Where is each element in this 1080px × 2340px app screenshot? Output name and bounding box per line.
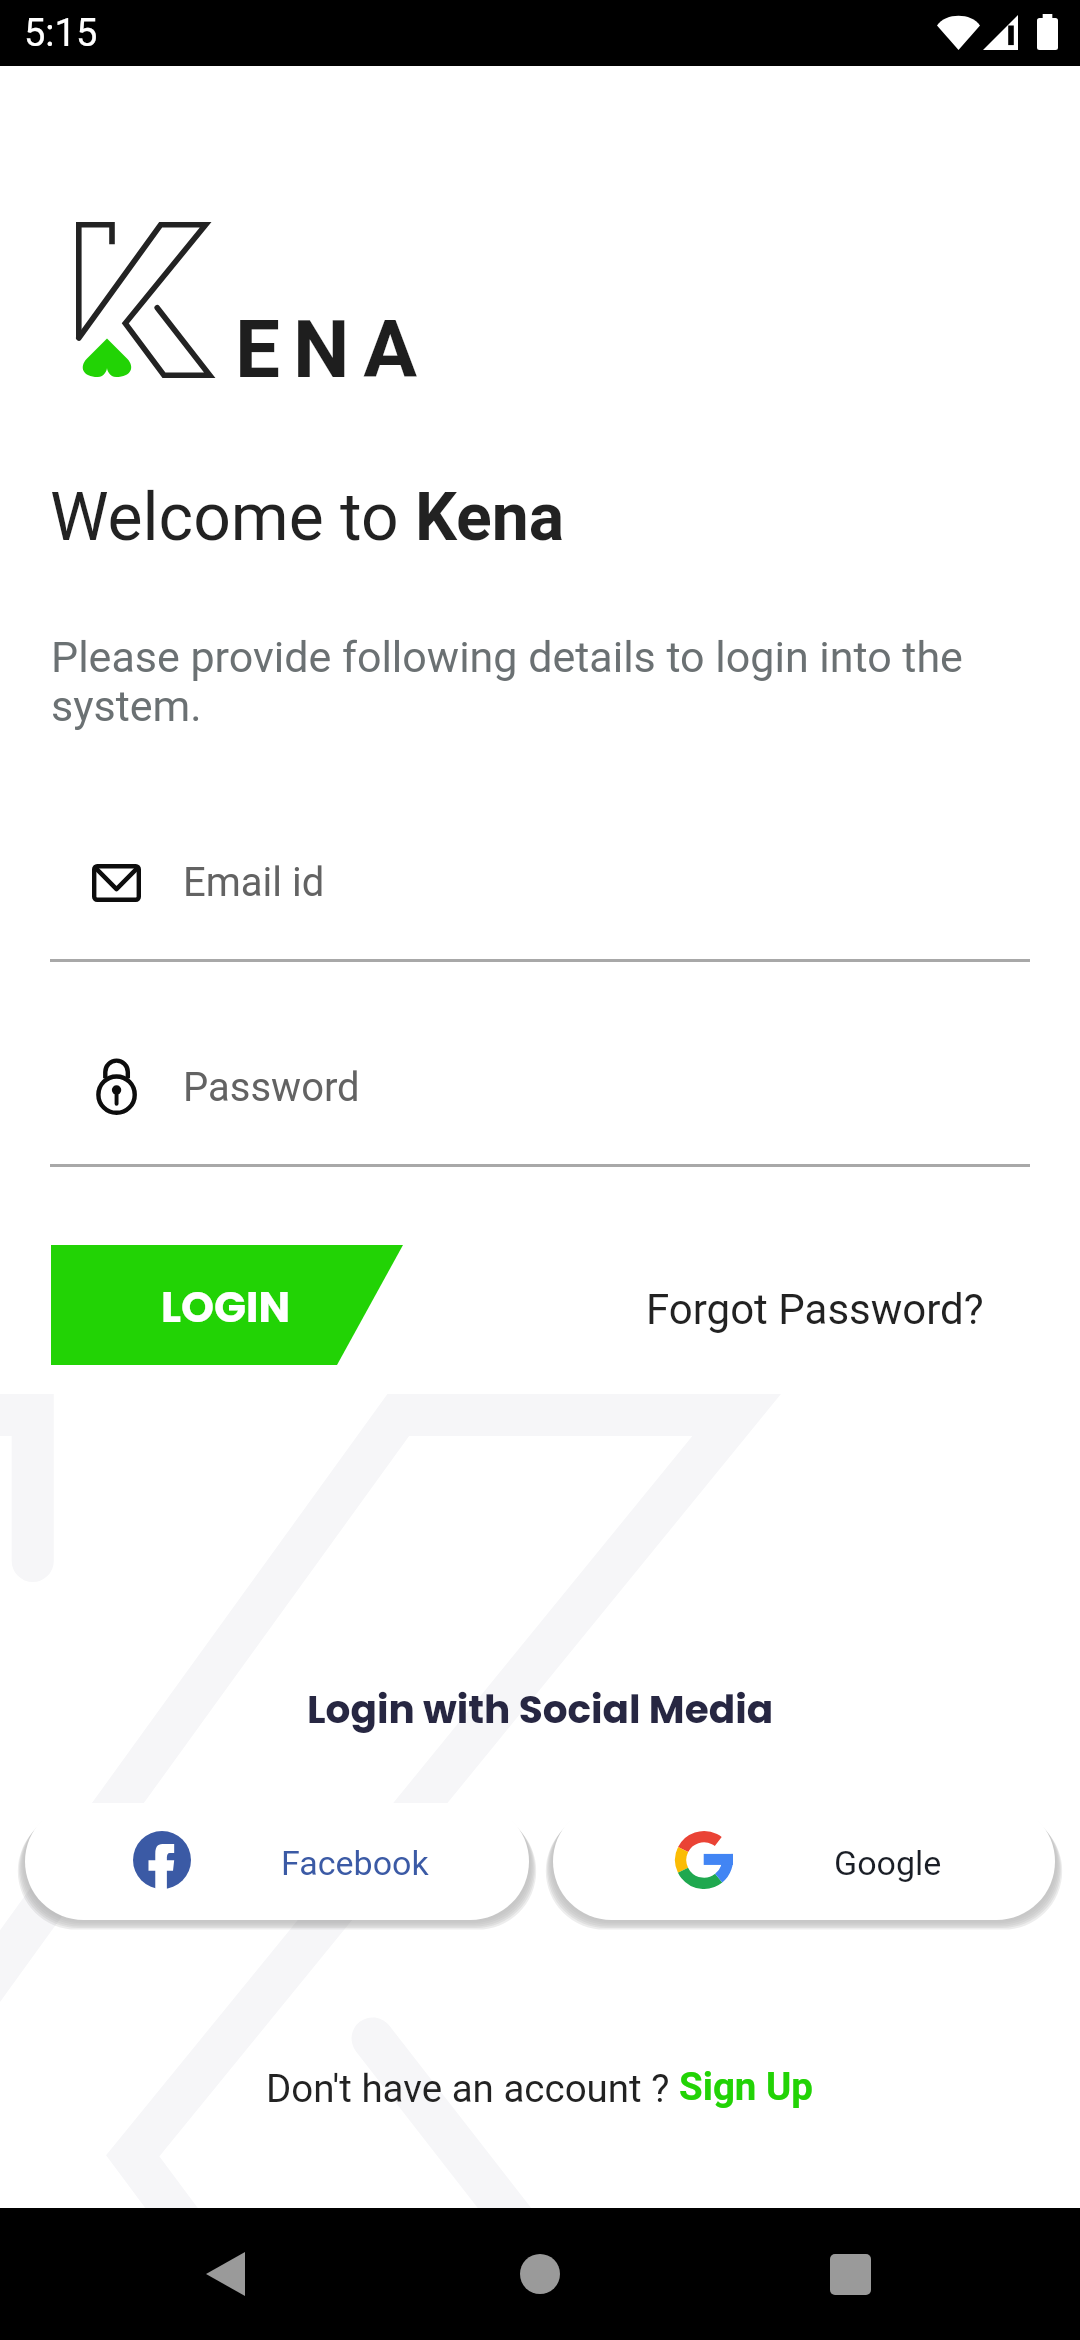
staticText: Facebook <box>281 1843 429 1883</box>
other: Back <box>206 2252 245 2296</box>
staticText: LOGIN <box>161 1278 291 1337</box>
button[interactable]: LOGIN <box>51 1245 403 1365</box>
staticText: Please provide following details to logi… <box>51 632 1031 731</box>
staticText: Google <box>834 1843 942 1883</box>
staticText: Password <box>183 1064 360 1111</box>
button[interactable]: Don't have an account ? <box>266 2066 814 2111</box>
other: Recent apps <box>830 2254 871 2295</box>
staticText: Forgot Password? <box>646 1285 984 1334</box>
staticText: 5:15 <box>24 11 98 56</box>
staticText: Email id <box>183 859 325 906</box>
button[interactable]: Forgot Password? <box>646 1285 984 1334</box>
button[interactable]: Facebook <box>25 1803 529 1920</box>
button[interactable]: Google <box>553 1803 1055 1920</box>
staticText: Sign Up <box>679 2064 814 2109</box>
staticText: Welcome to Kena <box>50 479 565 556</box>
other: Home <box>520 2254 560 2294</box>
staticText: Don't have an account ? <box>266 2066 679 2111</box>
staticText: Login with Social Media <box>307 1682 774 1737</box>
staticText: ENA <box>235 303 431 397</box>
